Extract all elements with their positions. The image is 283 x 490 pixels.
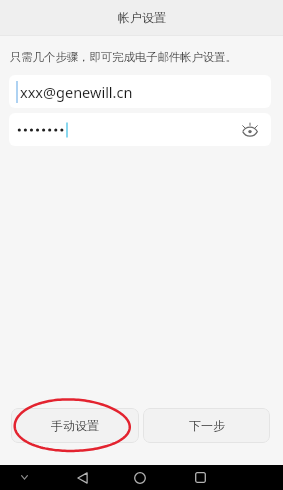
button[interactable]: Back xyxy=(66,465,98,490)
staticText: xxx@genewill.cn xyxy=(20,82,133,102)
button[interactable]: Recent apps xyxy=(184,465,216,490)
staticText: 手动设置 xyxy=(51,418,99,433)
button[interactable]: Home xyxy=(124,465,156,490)
button[interactable]: 下一步 xyxy=(143,408,270,443)
button[interactable]: Hide keyboard xyxy=(8,465,40,490)
staticText: 只需几个步骤，即可完成电子邮件帐户设置。 xyxy=(10,50,237,64)
button[interactable]: xxx@genewill.cn xyxy=(9,75,271,108)
staticText: 下一步 xyxy=(189,418,225,433)
button[interactable]: Show password xyxy=(9,113,271,146)
button[interactable]: Show password xyxy=(229,114,271,146)
staticText: 帐户设置 xyxy=(118,10,166,25)
button[interactable]: 手动设置 xyxy=(11,408,139,443)
